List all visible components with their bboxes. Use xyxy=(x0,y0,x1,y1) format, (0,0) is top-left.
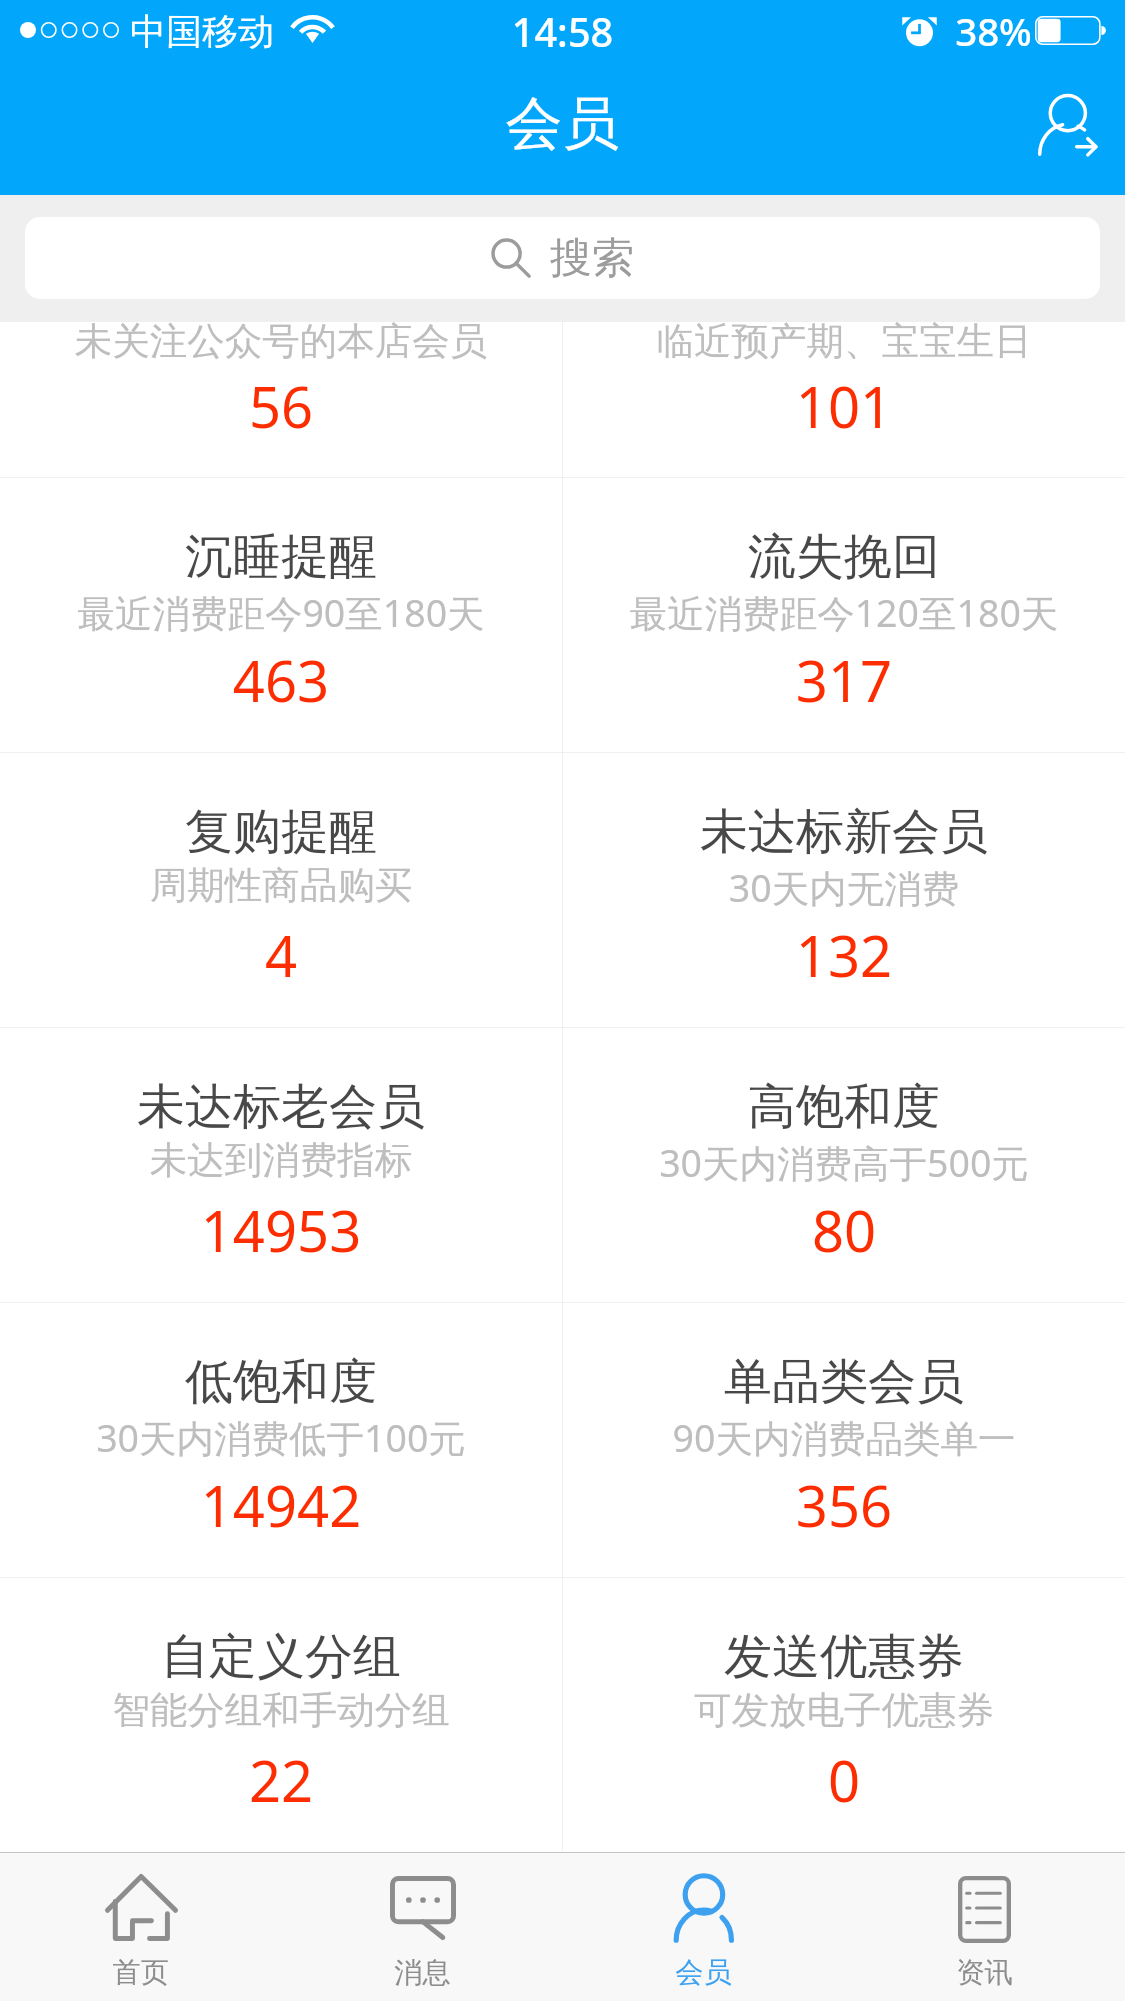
staticText: 356 xyxy=(563,1467,1125,1543)
staticText: 单品类会员 xyxy=(563,1352,1125,1412)
button[interactable]: 消息 xyxy=(282,1853,563,2001)
button[interactable]: 自定义分组 xyxy=(0,1578,562,1852)
button[interactable]: 沉睡提醒 xyxy=(0,478,562,752)
staticText: 4 xyxy=(0,917,562,993)
staticText: 临近预产期、宝宝生日 xyxy=(563,318,1125,365)
button[interactable]: 未达标新会员 xyxy=(563,753,1125,1027)
staticText: 38% xyxy=(955,5,1032,57)
button[interactable]: 发送优惠券 xyxy=(563,1578,1125,1852)
staticText: 最近消费距今90至180天 xyxy=(0,587,562,638)
staticText: 101 xyxy=(563,368,1125,444)
staticText: 会员 xyxy=(0,88,1125,160)
button[interactable]: 复购提醒 xyxy=(0,753,562,1027)
button[interactable]: 搜索 xyxy=(25,217,1100,299)
staticText: 高饱和度 xyxy=(563,1077,1125,1137)
staticText: 30天内消费低于100元 xyxy=(0,1412,562,1463)
staticText: 463 xyxy=(0,642,562,718)
button[interactable]: 高饱和度 xyxy=(563,1028,1125,1302)
staticText: 自定义分组 xyxy=(0,1627,562,1687)
staticText: 低饱和度 xyxy=(0,1352,562,1412)
staticText: 会员 xyxy=(563,1955,844,1991)
staticText: 未达标老会员 xyxy=(0,1077,562,1137)
staticText: 90天内消费品类单一 xyxy=(563,1412,1125,1463)
staticText: 首页 xyxy=(0,1955,282,1991)
staticText: 80 xyxy=(563,1192,1125,1268)
staticText: 未达标新会员 xyxy=(563,802,1125,862)
button[interactable]: 会员 xyxy=(563,1853,844,2001)
staticText: 发送优惠券 xyxy=(563,1627,1125,1687)
staticText: 消息 xyxy=(282,1955,563,1991)
staticText: 沉睡提醒 xyxy=(0,527,562,587)
staticText: 132 xyxy=(563,917,1125,993)
staticText: 30天内消费高于500元 xyxy=(563,1137,1125,1188)
button[interactable]: Add member xyxy=(1038,79,1116,157)
button[interactable]: 未达标老会员 xyxy=(0,1028,562,1302)
staticText: 30天内无消费 xyxy=(563,862,1125,913)
staticText: 最近消费距今120至180天 xyxy=(563,587,1125,638)
staticText: 流失挽回 xyxy=(563,527,1125,587)
staticText: 未关注公众号的本店会员 xyxy=(0,318,562,365)
button[interactable]: 临近预产期、宝宝生日 xyxy=(563,322,1125,477)
staticText: 14942 xyxy=(0,1467,562,1543)
staticText: 搜索 xyxy=(550,232,634,285)
button[interactable]: 低饱和度 xyxy=(0,1303,562,1577)
staticText: 14953 xyxy=(0,1192,562,1268)
staticText: 可发放电子优惠券 xyxy=(563,1687,1125,1734)
staticText: 未达到消费指标 xyxy=(0,1137,562,1184)
staticText: 0 xyxy=(563,1742,1125,1818)
button[interactable]: 单品类会员 xyxy=(563,1303,1125,1577)
button[interactable]: 资讯 xyxy=(844,1853,1125,2001)
staticText: 14:58 xyxy=(0,5,1125,59)
staticText: 317 xyxy=(563,642,1125,718)
staticText: 复购提醒 xyxy=(0,802,562,862)
staticText: 56 xyxy=(0,368,562,444)
staticText: 智能分组和手动分组 xyxy=(0,1687,562,1734)
button[interactable]: 流失挽回 xyxy=(563,478,1125,752)
button[interactable]: 未关注公众号的本店会员 xyxy=(0,322,562,477)
staticText: 中国移动 xyxy=(130,9,274,54)
staticText: 22 xyxy=(0,1742,562,1818)
button[interactable]: 首页 xyxy=(0,1853,282,2001)
staticText: 周期性商品购买 xyxy=(0,862,562,909)
staticText: 资讯 xyxy=(844,1955,1125,1991)
